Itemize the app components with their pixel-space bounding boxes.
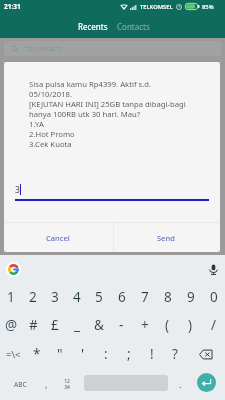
staticText: . — [179, 378, 182, 391]
button[interactable]: . — [170, 369, 190, 400]
button[interactable]: 8 — [156, 283, 179, 311]
button[interactable]: £ — [44, 311, 66, 339]
staticText: ABC — [14, 380, 27, 389]
button[interactable]: Recents — [73, 15, 113, 38]
staticText: 6 — [118, 288, 126, 306]
staticText: " — [57, 345, 63, 363]
staticText: TELKOMSEL — [140, 3, 173, 11]
staticText: 5 — [95, 288, 103, 306]
staticText: ' — [81, 345, 85, 363]
button[interactable]: 3 — [44, 283, 66, 311]
button[interactable]: ' — [71, 340, 94, 368]
button[interactable]: ) — [179, 311, 202, 339]
staticText: ; — [127, 345, 131, 363]
staticText: 3.Cek Kuota — [29, 139, 72, 149]
button[interactable]: Cancel — [4, 223, 112, 252]
staticText: Send — [157, 233, 175, 243]
button[interactable]: =\< — [2, 340, 25, 368]
staticText: 3 — [51, 288, 59, 306]
staticText: - — [119, 316, 124, 334]
staticText: 1 — [7, 288, 15, 306]
button[interactable]: " — [48, 340, 71, 368]
staticText: # — [29, 316, 38, 334]
staticText: : — [104, 345, 108, 363]
button[interactable]: & — [88, 311, 110, 339]
button[interactable]: 9 — [179, 283, 202, 311]
staticText: Sisa pulsa kamu Rp4399. Aktif s.d. — [29, 79, 152, 89]
staticText: ( — [165, 316, 170, 334]
button[interactable]: : — [94, 340, 117, 368]
button[interactable]: @ — [0, 311, 22, 339]
button[interactable]: _ — [66, 311, 88, 339]
button[interactable]: 0 — [202, 283, 225, 311]
staticText: Contacts — [117, 21, 150, 32]
staticText: 4 — [73, 288, 81, 306]
button[interactable]: Voice input — [205, 261, 221, 277]
staticText: & — [94, 316, 104, 334]
button[interactable]: Contacts — [113, 15, 153, 38]
button[interactable]: * — [25, 340, 48, 368]
button[interactable]: ? — [163, 340, 186, 368]
button[interactable]: ; — [117, 340, 140, 368]
staticText: hanya 100RB utk 30 hari. Mau? — [29, 109, 141, 119]
staticText: * — [33, 345, 41, 363]
button[interactable]: ( — [156, 311, 179, 339]
staticText: ! — [150, 345, 154, 363]
button[interactable]: - — [110, 311, 133, 339]
staticText: , — [45, 378, 48, 391]
button[interactable]: , — [36, 369, 56, 400]
button[interactable]: Enter — [197, 373, 216, 392]
staticText: 0 — [210, 288, 218, 306]
staticText: 85% — [202, 3, 214, 11]
staticText: 7 — [141, 288, 149, 306]
staticText: £ — [51, 316, 59, 334]
staticText: ? — [172, 345, 178, 363]
staticText: [KEJUTAN HARI INI] 25GB tanpa dibagi-bag… — [29, 99, 186, 109]
button[interactable]: Backspace — [186, 340, 225, 368]
button[interactable]: 5 — [88, 283, 110, 311]
staticText: Recents — [78, 21, 108, 32]
staticText: 56 contacts — [25, 44, 63, 54]
staticText: @ — [5, 316, 18, 334]
button[interactable]: + — [133, 311, 156, 339]
staticText: 2.Hot Promo — [29, 129, 75, 139]
staticText: Cancel — [46, 233, 70, 243]
staticText: 21:31 — [4, 2, 21, 11]
button[interactable]: 1 — [0, 283, 22, 311]
button[interactable]: 2 — [22, 283, 44, 311]
button[interactable]: / — [202, 311, 225, 339]
staticText: + — [141, 316, 149, 334]
staticText: 05/10/2018. — [29, 89, 72, 99]
staticText: 3 — [15, 184, 20, 196]
staticText: 9 — [187, 288, 195, 306]
staticText: 8 — [164, 288, 172, 306]
button[interactable]: # — [22, 311, 44, 339]
button[interactable]: 56 contacts — [4, 41, 221, 56]
staticText: 2 — [29, 288, 37, 306]
staticText: 12 34 — [64, 378, 70, 391]
button[interactable]: ABC — [4, 369, 36, 400]
staticText: ) — [188, 316, 193, 334]
staticText: / — [211, 316, 217, 334]
staticText: _ — [74, 316, 80, 334]
button[interactable]: Google — [6, 262, 21, 277]
button[interactable]: 7 — [133, 283, 156, 311]
button[interactable]: ! — [140, 340, 163, 368]
button[interactable]: 6 — [110, 283, 133, 311]
button[interactable]: Send — [112, 223, 220, 252]
staticText: 1.YA — [29, 119, 44, 129]
staticText: =\< — [6, 348, 21, 361]
button[interactable]: 12 34 — [56, 369, 78, 400]
button[interactable]: 4 — [66, 283, 88, 311]
